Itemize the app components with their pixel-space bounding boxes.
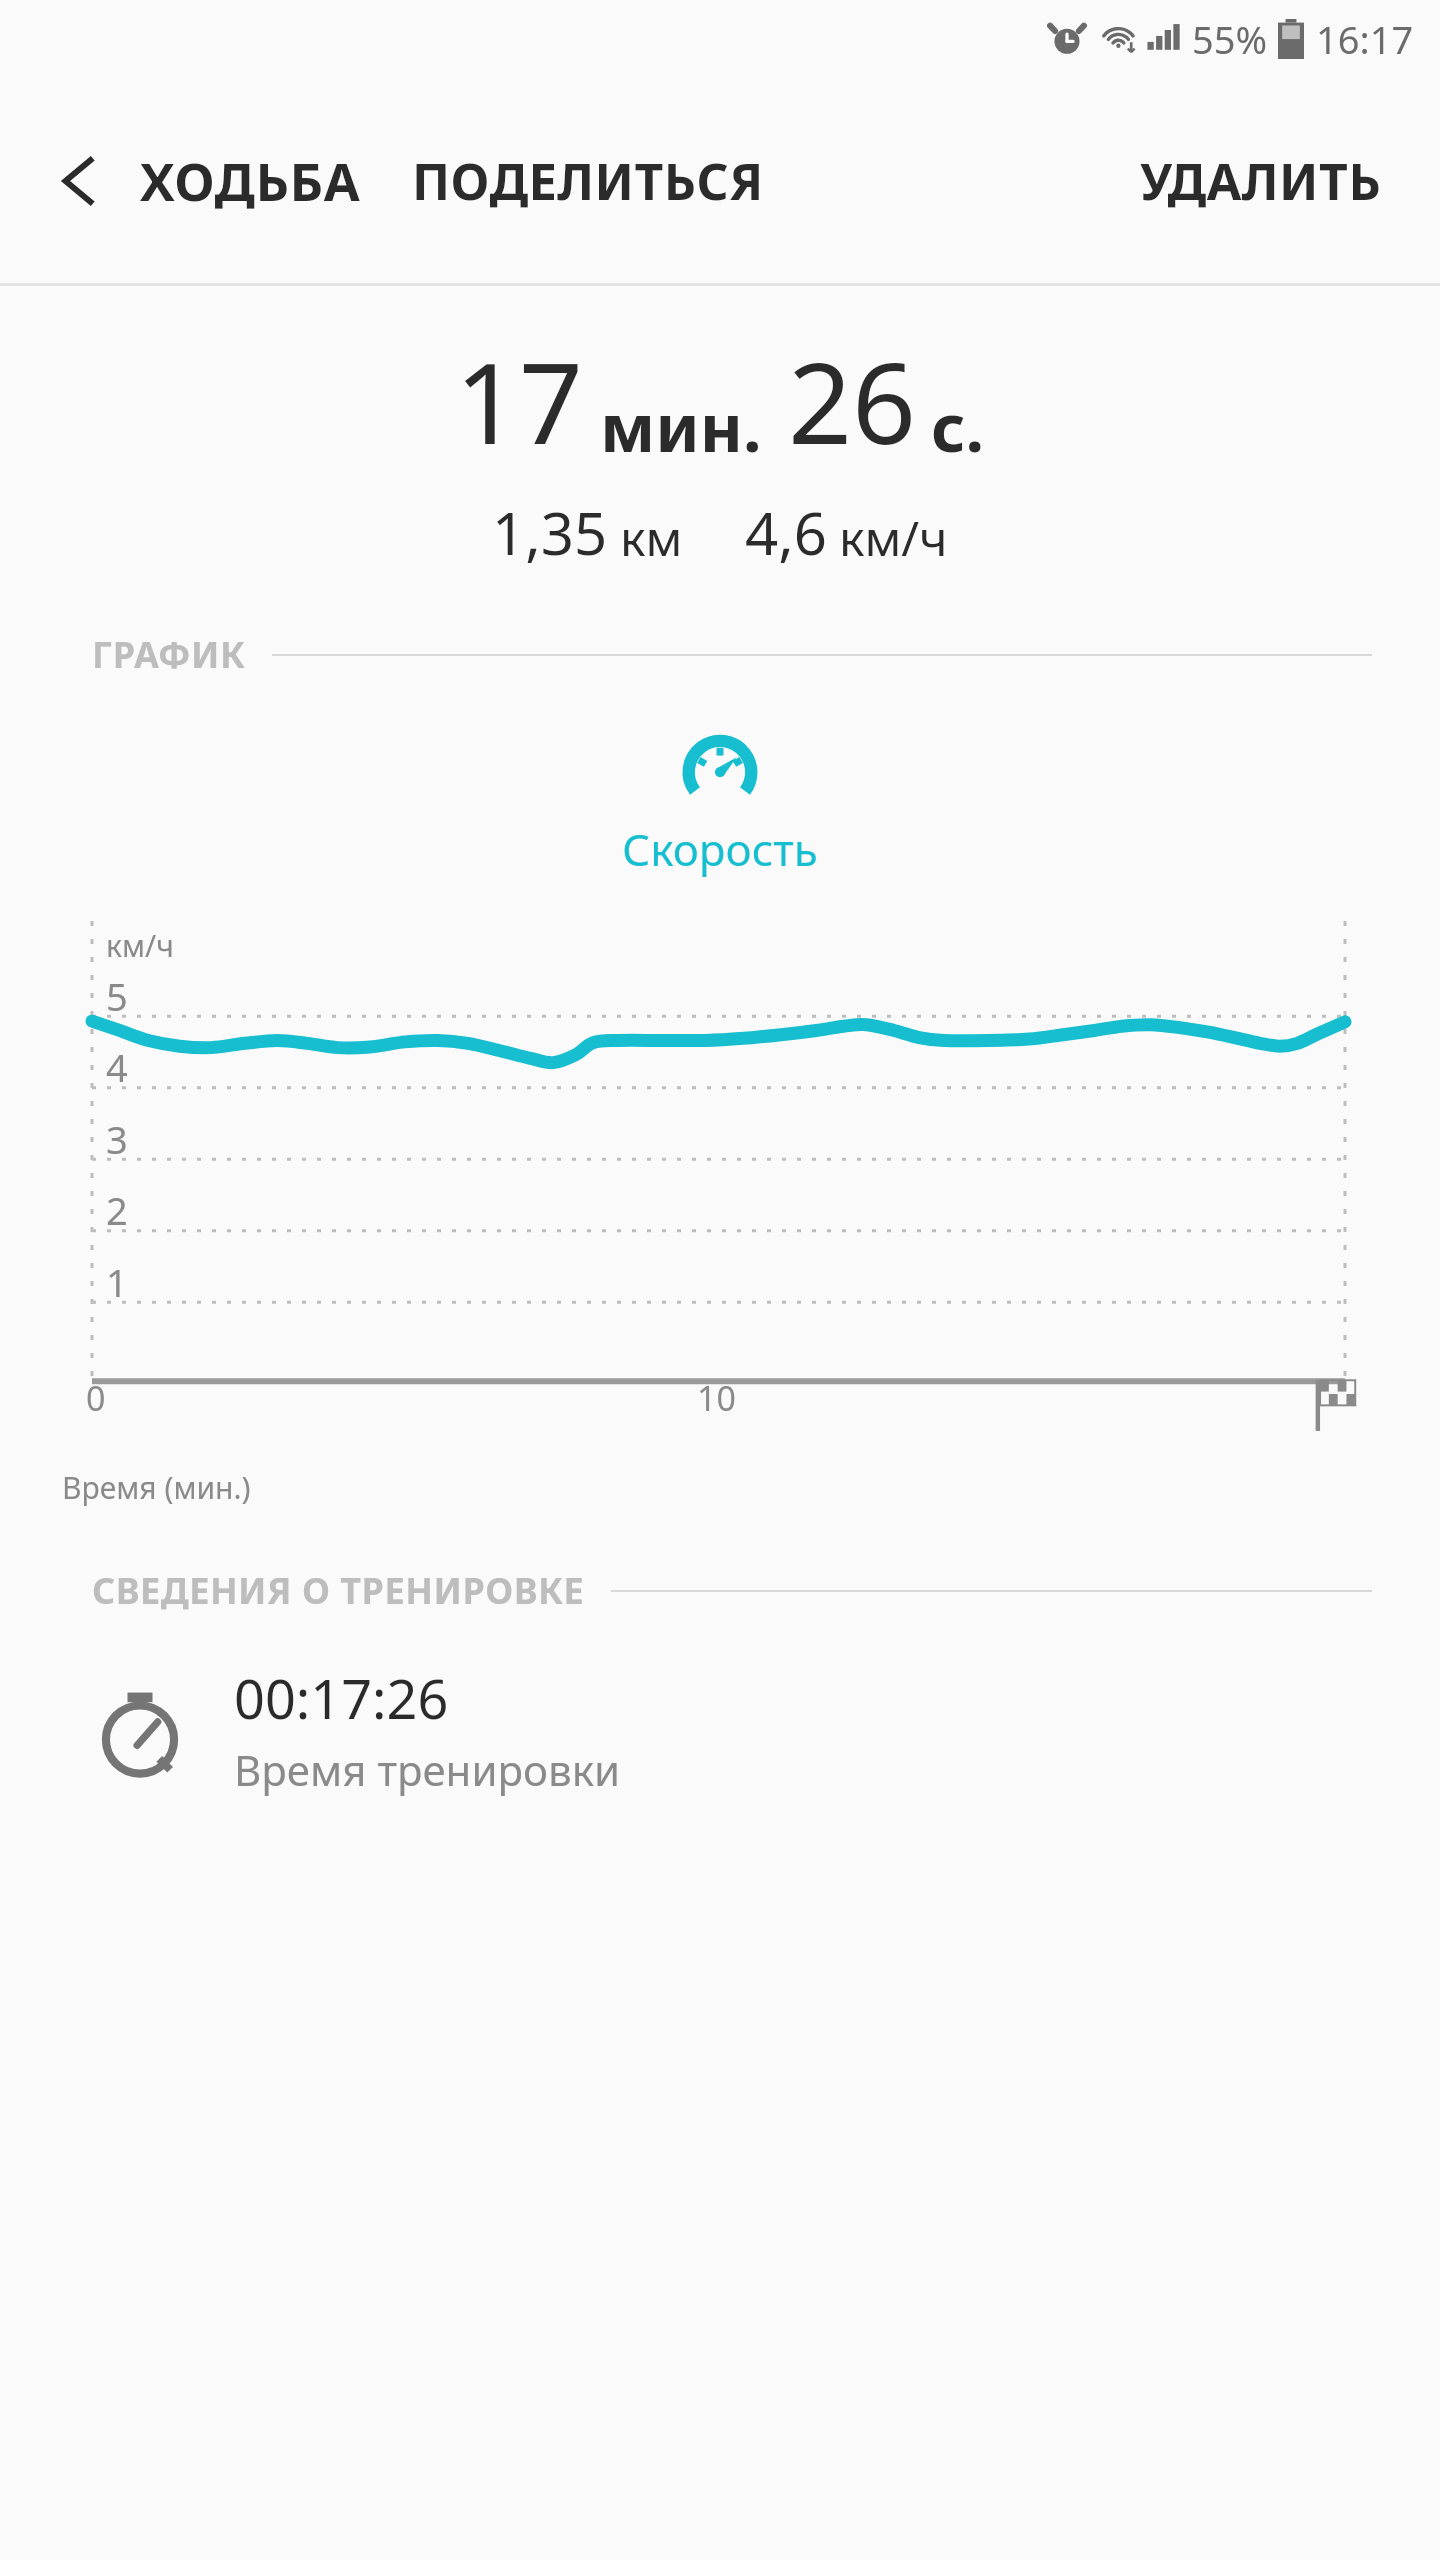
staticText: 16:17 — [1316, 13, 1414, 65]
button[interactable]: ПОДЕЛИТЬСЯ — [398, 127, 778, 235]
staticText: ХОДЬБА — [140, 145, 361, 216]
staticText: 2 — [106, 1184, 128, 1236]
staticText: ПОДЕЛИТЬСЯ — [412, 147, 764, 215]
staticText: СВЕДЕНИЯ О ТРЕНИРОВКЕ — [92, 1566, 585, 1615]
staticText: 3 — [106, 1113, 128, 1165]
staticText: 55% — [1192, 13, 1268, 65]
staticText: ГРАФИК — [92, 630, 246, 679]
button[interactable]: Скорость — [0, 717, 1440, 879]
staticText: 4 — [106, 1041, 128, 1093]
staticText: 1,35 — [492, 493, 608, 572]
staticText: 26 — [788, 324, 917, 477]
staticText: 4,6 — [745, 493, 827, 572]
staticText: км — [620, 505, 683, 570]
staticText: 10 — [697, 1375, 736, 1421]
other: Скорость — [674, 717, 766, 809]
staticText: Время (мин.) — [62, 1467, 251, 1508]
button[interactable]: 00:17:26 — [0, 1651, 1440, 1808]
staticText: 00:17:26 — [234, 1661, 449, 1735]
staticText: 17 — [455, 324, 584, 477]
button[interactable]: УДАЛИТЬ — [1126, 127, 1396, 235]
button[interactable]: Назад — [30, 132, 128, 230]
staticText: 5 — [106, 970, 128, 1022]
staticText: км/ч — [839, 505, 948, 570]
staticText: 1 — [106, 1256, 128, 1308]
staticText: мин. — [600, 381, 762, 471]
staticText: км/ч — [106, 925, 174, 966]
staticText: УДАЛИТЬ — [1140, 147, 1382, 215]
staticText: 0 — [86, 1375, 106, 1421]
button[interactable]: ХОДЬБА — [130, 125, 371, 236]
staticText: с. — [931, 381, 985, 471]
staticText: Скорость — [622, 819, 818, 879]
staticText: Время тренировки — [234, 1741, 621, 1798]
